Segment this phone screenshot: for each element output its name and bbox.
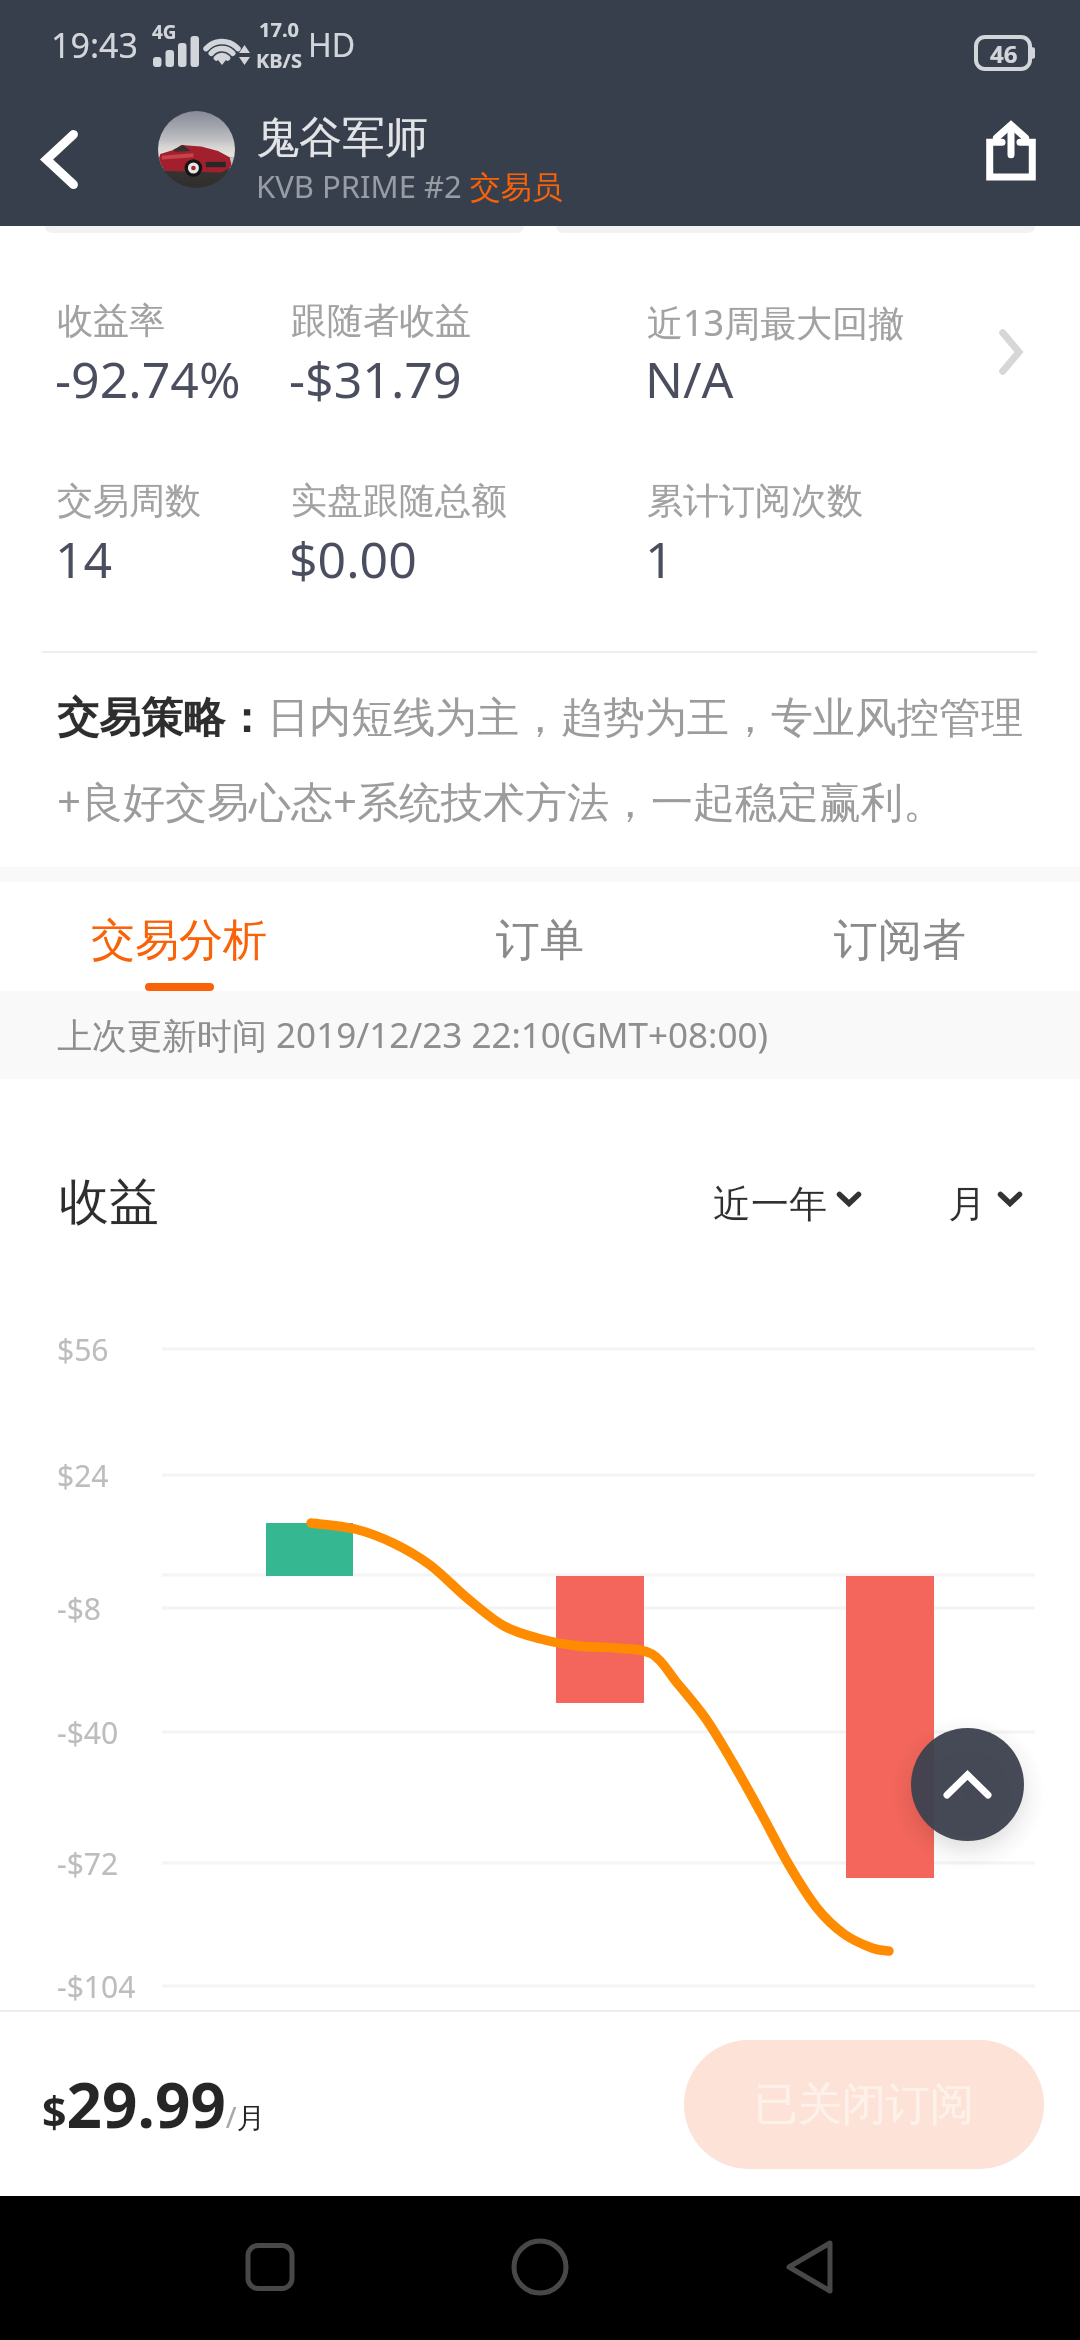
staticText: 月 (948, 1180, 986, 1228)
staticText: 交易周数 (57, 478, 201, 523)
staticText: 累计订阅次数 (647, 478, 863, 523)
staticText: 跟随者收益 (291, 298, 471, 343)
button[interactable]: 月 (948, 1163, 1022, 1233)
staticText: $29.99/月 (42, 2062, 266, 2146)
staticText: 17.0 (259, 16, 299, 43)
staticText: -$104 (57, 1966, 136, 2007)
button[interactable]: Scroll to top (911, 1728, 1024, 1841)
staticText: 近一年 (713, 1180, 827, 1228)
staticText: 实盘跟随总额 (291, 478, 507, 523)
staticText: $0.00 (289, 525, 417, 593)
button[interactable]: 交易分析 (39, 890, 319, 990)
staticText: 订单 (496, 913, 584, 968)
button[interactable]: 已关闭订阅 (684, 2040, 1044, 2169)
staticText: 交易策略：日内短线为主，趋势为王，专业风控管理+良好交易心态+系统技术方法，一起… (57, 692, 1039, 829)
staticText: 已关闭订阅 (754, 2077, 974, 2132)
staticText: 1 (645, 525, 674, 593)
staticText: -$72 (57, 1843, 119, 1884)
staticText: 收益 (59, 1171, 159, 1234)
staticText: -$40 (57, 1712, 119, 1753)
button[interactable]: 近一年 (713, 1163, 861, 1233)
button[interactable]: Share (951, 91, 1071, 211)
staticText: N/A (645, 345, 734, 413)
staticText: 14 (55, 525, 113, 593)
staticText: 鬼谷军师 (256, 111, 428, 165)
button[interactable]: 订单 (400, 890, 680, 990)
staticText: 46 (990, 37, 1018, 70)
button[interactable]: Back (0, 91, 120, 227)
staticText: $24 (57, 1455, 109, 1496)
staticText: HD (308, 23, 356, 67)
staticText: KVB PRIME #2 交易员 (256, 165, 563, 207)
staticText: 收益率 (57, 298, 165, 343)
staticText: 订阅者 (834, 913, 966, 968)
staticText: 上次更新时间 2019/12/23 22:10(GMT+08:00) (57, 1011, 769, 1059)
staticText: 近13周最大回撤 (647, 298, 905, 347)
staticText: KB/S (256, 47, 302, 74)
staticText: -$8 (57, 1588, 101, 1629)
button[interactable]: 收益率 (0, 250, 1080, 640)
staticText: 4G (152, 19, 177, 45)
staticText: 交易分析 (91, 913, 267, 968)
staticText: 19:43 (51, 22, 138, 68)
staticText: $56 (57, 1329, 109, 1370)
button[interactable]: 订阅者 (760, 890, 1040, 990)
staticText: -$31.79 (289, 345, 462, 413)
staticText: -92.74% (55, 345, 241, 413)
